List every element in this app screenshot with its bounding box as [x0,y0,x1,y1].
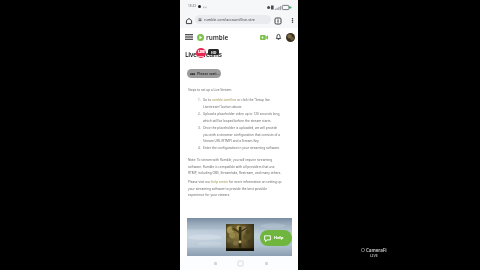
staticText: 1. [198,98,201,102]
button[interactable]: More options [287,15,298,26]
staticText: 2. [198,112,201,116]
button[interactable]: Menu [183,31,195,43]
button[interactable]: rumble [197,31,229,43]
staticText: Please visit our help center for more in… [188,180,282,197]
staticText: 3. [198,126,201,130]
button[interactable]: Notifications [272,31,284,43]
button[interactable]: Help [260,230,292,246]
staticText: CameraFi [366,247,387,253]
staticText: Live Streams [185,50,222,59]
staticText: Help [274,235,284,241]
button[interactable]: Home [183,15,194,26]
button[interactable]: Account [286,33,295,42]
button[interactable]: Tabs [272,15,283,26]
staticText: rumble [206,33,229,42]
staticText: rumble.com/account/live-stre [204,17,255,22]
button[interactable]: Recent apps [260,257,272,269]
button[interactable]: Go live [258,31,270,43]
staticText: Please wait... [197,71,220,76]
staticText: Note: To stream with Rumble, you will re… [188,158,282,175]
button[interactable]: Home [234,257,246,269]
staticText: LIVE [198,50,205,54]
button[interactable]: rumble.com/account/live-stre [195,15,271,24]
staticText: LIVE [370,253,378,258]
button[interactable]: Please wait... [187,69,221,78]
button[interactable]: Back [209,257,221,269]
staticText: Enter the configuration in your streamin… [203,146,280,150]
staticText: Upload a placeholder video up to 120 sec… [203,112,282,123]
staticText: Once the placeholder is uploaded, we wil… [203,126,282,143]
staticText: 18:23 [188,4,197,8]
staticText: Steps to set up a Live Stream: [188,88,232,92]
staticText: 4. [198,146,201,150]
staticText: HD [211,50,217,55]
staticText: NOW [198,54,205,57]
staticText: Go to rumble.com/live or click the “Setu… [203,98,282,109]
